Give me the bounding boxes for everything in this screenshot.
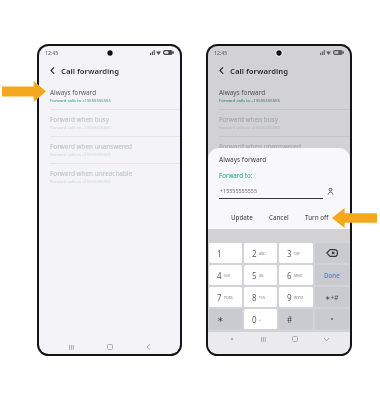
- staticText: Cancel: [269, 213, 289, 221]
- button[interactable]: Back: [141, 340, 155, 354]
- button[interactable]: Forward when busy: [39, 110, 180, 137]
- staticText: Always forward: [219, 88, 266, 97]
- staticText: PQRS: [224, 295, 233, 300]
- staticText: MNO: [294, 273, 303, 278]
- staticText: Update: [231, 213, 253, 221]
- button[interactable]: 3: [279, 243, 313, 263]
- staticText: Always forward: [50, 88, 97, 97]
- staticText: JKL: [259, 273, 264, 278]
- staticText: Forward calls to +15555555555: [50, 98, 111, 104]
- staticText: 3: [287, 248, 292, 259]
- button[interactable]: 4: [209, 265, 242, 285]
- staticText: Turn off: [305, 213, 329, 221]
- button[interactable]: Forward when unreachable: [208, 164, 350, 191]
- button[interactable]: Forward when unanswered: [39, 137, 180, 164]
- button[interactable]: #: [279, 309, 313, 329]
- staticText: 6: [287, 270, 292, 281]
- staticText: #: [287, 314, 293, 325]
- staticText: 4: [217, 270, 222, 281]
- button[interactable]: ∗: [209, 309, 242, 329]
- staticText: Forward when unanswered: [50, 142, 132, 151]
- button[interactable]: Navigate up: [47, 65, 58, 76]
- staticText: ABC: [259, 251, 266, 256]
- button[interactable]: 2: [244, 243, 277, 263]
- staticText: ∗: [217, 315, 224, 324]
- staticText: Forward calls to +15555555555: [50, 125, 111, 131]
- staticText: Always forward: [219, 155, 267, 164]
- button[interactable]: Done: [315, 265, 349, 285]
- staticText: Done: [324, 271, 340, 279]
- button[interactable]: Home: [103, 340, 117, 354]
- staticText: 7: [217, 292, 222, 303]
- button[interactable]: [315, 309, 349, 329]
- button[interactable]: 7: [209, 287, 242, 307]
- button[interactable]: Recents: [64, 340, 78, 354]
- button[interactable]: Forward when unanswered: [208, 137, 350, 164]
- button[interactable]: Navigate up: [216, 65, 227, 76]
- button[interactable]: Update: [229, 211, 255, 223]
- staticText: GHI: [224, 273, 231, 278]
- staticText: 12:45: [45, 49, 59, 56]
- button[interactable]: Forward when busy: [208, 110, 350, 137]
- staticText: 9: [287, 292, 292, 303]
- staticText: Forward calls to +15555555555: [50, 179, 111, 185]
- button[interactable]: 9: [279, 287, 313, 307]
- button[interactable]: Always forward: [39, 83, 180, 110]
- staticText: 2: [252, 248, 257, 259]
- staticText: ∗+#: [325, 293, 339, 302]
- staticText: 5: [252, 270, 257, 281]
- staticText: Forward calls to +15555555555: [219, 125, 280, 131]
- button[interactable]: Choose contact: [324, 185, 337, 198]
- staticText: DEF: [294, 251, 301, 256]
- staticText: Forward when busy: [219, 115, 278, 124]
- button[interactable]: Cancel: [267, 211, 291, 223]
- staticText: 8: [252, 292, 257, 303]
- button[interactable]: [315, 243, 349, 263]
- button[interactable]: ∗+#: [315, 287, 349, 307]
- button[interactable]: Always forward: [208, 83, 350, 110]
- button[interactable]: Recents: [256, 332, 270, 346]
- staticText: Forward calls to +15555555555: [219, 152, 280, 158]
- staticText: Forward calls to +15555555555: [50, 152, 111, 158]
- staticText: Forward when unreachable: [219, 169, 302, 178]
- button[interactable]: 0: [244, 309, 277, 329]
- staticText: 0: [252, 314, 257, 325]
- staticText: +: [259, 317, 261, 322]
- staticText: TUV: [259, 295, 266, 300]
- staticText: 12:45: [214, 49, 228, 56]
- staticText: 1: [217, 248, 222, 259]
- staticText: Forward calls to +15555555555: [219, 98, 280, 104]
- button[interactable]: Hide keyboard: [319, 332, 333, 346]
- staticText: Forward when unreachable: [50, 169, 133, 178]
- button[interactable]: Turn off: [303, 211, 331, 223]
- staticText: WXYZ: [294, 295, 303, 300]
- button[interactable]: Home: [288, 332, 302, 346]
- button[interactable]: 5: [244, 265, 277, 285]
- staticText: Call forwarding: [61, 66, 120, 76]
- staticText: Forward when unanswered: [219, 142, 301, 151]
- button[interactable]: 1: [209, 243, 242, 263]
- button[interactable]: 6: [279, 265, 313, 285]
- button[interactable]: Keyboard options: [225, 332, 239, 346]
- staticText: Forward to:: [219, 171, 253, 179]
- staticText: Call forwarding: [230, 66, 289, 76]
- staticText: +15555555555: [220, 187, 258, 194]
- staticText: Forward when busy: [50, 115, 109, 124]
- button[interactable]: 8: [244, 287, 277, 307]
- button[interactable]: Forward when unreachable: [39, 164, 180, 191]
